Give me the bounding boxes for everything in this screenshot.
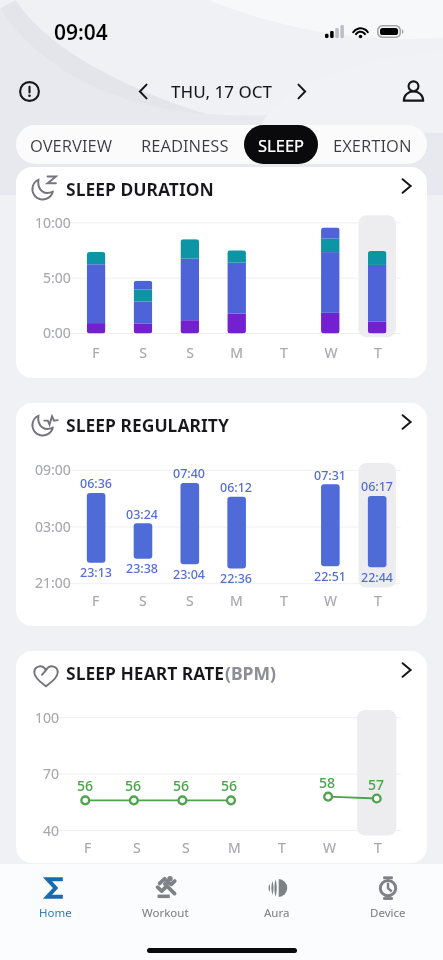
staticText: T xyxy=(374,838,382,857)
staticText: S xyxy=(139,343,147,362)
staticText: Device xyxy=(370,905,406,921)
staticText: 22:44 xyxy=(361,569,394,586)
staticText: Aura xyxy=(264,905,290,921)
staticText: 23:38 xyxy=(126,560,159,577)
staticText: Workout xyxy=(142,905,189,921)
staticText: S xyxy=(186,591,194,610)
staticText: T xyxy=(280,343,288,362)
staticText: M xyxy=(228,838,241,857)
button[interactable]: OVERVIEW xyxy=(16,125,126,164)
staticText: 100 xyxy=(35,708,60,727)
staticText: 09:00 xyxy=(35,460,71,479)
staticText: 07:40 xyxy=(173,465,206,482)
button[interactable]: Workout xyxy=(110,864,221,932)
button[interactable]: Device xyxy=(332,864,443,932)
staticText: W xyxy=(323,838,337,857)
staticText: 09:04 xyxy=(54,18,108,47)
button[interactable]: Information xyxy=(12,74,46,108)
staticText: 56 xyxy=(173,776,190,795)
staticText: T xyxy=(278,838,286,857)
staticText: 03:24 xyxy=(126,506,159,523)
staticText: Home xyxy=(39,905,72,921)
staticText: 58 xyxy=(319,773,336,792)
staticText: T xyxy=(374,591,382,610)
staticText: 21:00 xyxy=(35,573,71,592)
staticText: S xyxy=(182,838,190,857)
staticText: 70 xyxy=(43,764,60,783)
staticText: F xyxy=(92,343,100,362)
staticText: (BPM) xyxy=(225,661,276,685)
staticText: 5:00 xyxy=(43,268,71,287)
staticText: SLEEP HEART RATE xyxy=(66,661,225,685)
staticText: F xyxy=(84,838,92,857)
staticText: 56 xyxy=(125,776,142,795)
button[interactable]: THU, 17 OCT xyxy=(171,80,273,103)
staticText: 06:17 xyxy=(361,478,394,495)
staticText: S xyxy=(139,591,147,610)
staticText: T xyxy=(280,591,288,610)
staticText: 22:36 xyxy=(220,570,253,587)
staticText: SLEEP DURATION xyxy=(66,177,214,201)
staticText: M xyxy=(230,343,243,362)
staticText: T xyxy=(374,343,382,362)
staticText: M xyxy=(230,591,243,610)
button[interactable]: Profile xyxy=(396,74,430,108)
staticText: 56 xyxy=(221,776,238,795)
staticText: W xyxy=(324,591,338,610)
button[interactable]: SLEEP DURATION xyxy=(16,167,427,211)
staticText: F xyxy=(92,591,100,610)
button[interactable]: SLEEP xyxy=(244,125,318,164)
staticText: 22:51 xyxy=(314,568,347,585)
staticText: 56 xyxy=(77,776,94,795)
staticText: W xyxy=(324,343,338,362)
staticText: S xyxy=(186,343,194,362)
staticText: 40 xyxy=(43,821,60,840)
staticText: 23:04 xyxy=(173,566,206,583)
button[interactable]: Home xyxy=(0,864,110,932)
staticText: SLEEP xyxy=(258,134,305,156)
staticText: 06:36 xyxy=(80,475,113,492)
staticText: READINESS xyxy=(141,134,229,156)
staticText: 03:00 xyxy=(35,517,71,536)
staticText: 23:13 xyxy=(80,564,113,581)
button[interactable]: Previous day xyxy=(126,74,160,108)
button[interactable]: SLEEP REGULARITY xyxy=(16,403,427,447)
staticText: EXERTION xyxy=(333,134,412,156)
staticText: 07:31 xyxy=(314,467,347,484)
button[interactable]: SLEEP HEART RATE xyxy=(16,651,427,695)
button[interactable]: EXERTION xyxy=(318,125,427,164)
button[interactable]: Next day xyxy=(284,74,318,108)
staticText: 10:00 xyxy=(35,213,71,232)
staticText: S xyxy=(133,838,141,857)
staticText: 57 xyxy=(368,775,385,794)
staticText: SLEEP REGULARITY xyxy=(66,413,229,437)
button[interactable]: Aura xyxy=(221,864,332,932)
staticText: 06:12 xyxy=(220,479,253,496)
staticText: 0:00 xyxy=(43,323,71,342)
staticText: OVERVIEW xyxy=(30,134,113,156)
button[interactable]: READINESS xyxy=(126,125,244,164)
